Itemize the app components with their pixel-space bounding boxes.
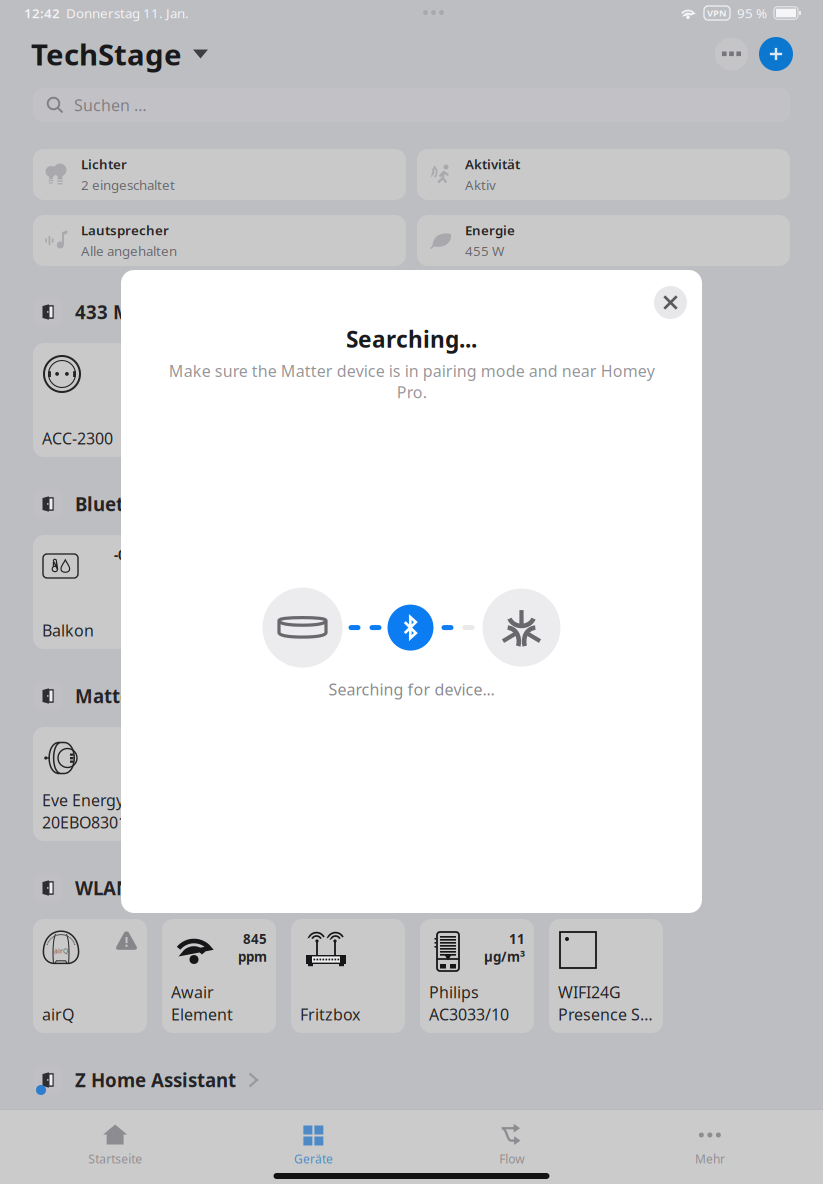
button[interactable]: TechStage: [31, 34, 208, 73]
staticText: airQ: [42, 1004, 74, 1025]
button[interactable]: Mehr: [611, 1110, 809, 1168]
button[interactable]: Bluetooth: [33, 489, 790, 519]
button[interactable]: ACC-2300: [33, 343, 147, 457]
staticText: ppm: [238, 948, 267, 965]
button[interactable]: -0.4: [33, 535, 147, 649]
button[interactable]: Energie: [417, 215, 790, 266]
staticText: WIFI24G: [558, 981, 621, 1003]
staticText: 12:42: [24, 4, 60, 22]
staticText: TechStage: [31, 34, 182, 73]
button[interactable]: 433 MHz: [33, 297, 790, 327]
staticText: 455 W: [465, 242, 504, 260]
staticText: Aktiv: [465, 176, 496, 194]
staticText: Mehr: [695, 1151, 725, 1167]
staticText: 433 MHz: [75, 300, 154, 324]
staticText: 20EBO8301: [42, 812, 127, 833]
button[interactable]: Eve Energy: [33, 727, 147, 841]
button[interactable]: Add device: [759, 37, 793, 71]
staticText: VPN: [707, 7, 727, 19]
button[interactable]: Suchen …: [33, 88, 790, 122]
staticText: Z Home Assistant: [75, 1068, 236, 1092]
button[interactable]: Lichter: [33, 149, 406, 200]
staticText: Flow: [499, 1151, 524, 1167]
staticText: 11: [509, 930, 525, 948]
button[interactable]: airQ: [33, 919, 147, 1033]
button[interactable]: Lautsprecher: [33, 215, 406, 266]
button[interactable]: Fritzbox: [291, 919, 405, 1033]
staticText: Eve Energy: [42, 789, 124, 811]
staticText: Aktivität: [465, 155, 520, 173]
staticText: AC3033/10: [429, 1004, 509, 1025]
button[interactable]: Startseite: [16, 1110, 214, 1168]
staticText: Balkon: [42, 620, 94, 641]
button[interactable]: Flow: [412, 1110, 611, 1168]
button[interactable]: Aktivität: [417, 149, 790, 200]
button[interactable]: More options: [715, 37, 748, 70]
staticText: Philips: [429, 981, 479, 1003]
staticText: Startseite: [88, 1151, 142, 1167]
staticText: WLAN: [75, 876, 131, 900]
staticText: -0.4: [114, 546, 138, 564]
staticText: Suchen …: [74, 94, 147, 116]
staticText: Bluetooth: [75, 492, 168, 516]
button[interactable]: Z Home Assistant: [33, 1065, 790, 1095]
staticText: Alle angehalten: [81, 242, 177, 260]
staticText: Presence S…: [558, 1004, 653, 1025]
button[interactable]: Geräte: [214, 1110, 412, 1168]
staticText: Geräte: [294, 1151, 333, 1167]
staticText: Searching for device...: [328, 679, 494, 700]
staticText: Fritzbox: [300, 1004, 360, 1025]
staticText: Matter: [75, 684, 139, 708]
staticText: airQ: [54, 947, 68, 955]
staticText: Lautsprecher: [81, 221, 169, 239]
staticText: Searching...: [346, 324, 477, 354]
staticText: Awair: [171, 981, 214, 1003]
staticText: ACC-2300: [42, 428, 113, 449]
button[interactable]: Matter: [33, 681, 790, 711]
staticText: 845: [243, 930, 267, 948]
button[interactable]: 11: [420, 919, 534, 1033]
staticText: 95 %: [737, 4, 767, 22]
staticText: Lichter: [81, 155, 127, 173]
staticText: Donnerstag 11. Jan.: [60, 4, 189, 22]
staticText: µg/m³: [484, 948, 525, 965]
staticText: Energie: [465, 221, 515, 239]
staticText: 2 eingeschaltet: [81, 176, 175, 194]
button[interactable]: WIFI24G: [549, 919, 663, 1033]
button[interactable]: 845: [162, 919, 276, 1033]
staticText: Make sure the Matter device is in pairin…: [168, 360, 654, 403]
staticText: Element: [171, 1004, 233, 1025]
button[interactable]: Close: [654, 286, 687, 319]
button[interactable]: WLAN: [33, 873, 790, 903]
